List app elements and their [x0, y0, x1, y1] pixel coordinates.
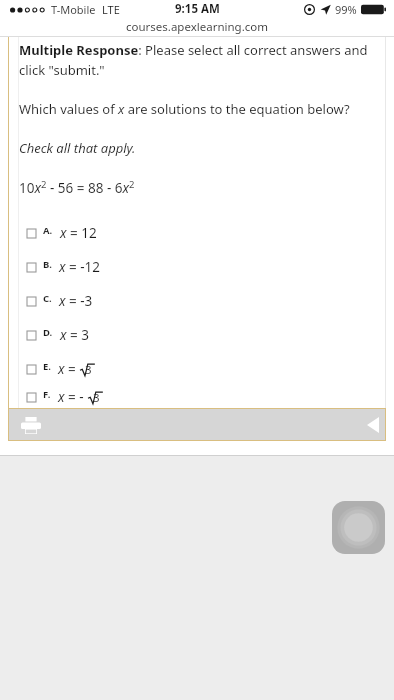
staticText: C. [43, 292, 52, 305]
staticText: F. [43, 388, 51, 401]
button[interactable]: F. [19, 386, 380, 408]
staticText: 3 [85, 362, 92, 378]
button[interactable]: More [362, 412, 384, 438]
staticText: click "submit." [19, 61, 105, 79]
staticText: LTE [102, 2, 120, 17]
staticText: x = - [58, 388, 88, 406]
button[interactable]: Print [18, 412, 44, 438]
staticText: B. [43, 258, 52, 271]
staticText: Check all that apply. [19, 139, 136, 157]
staticText: 3 [93, 390, 100, 406]
staticText: 99% [335, 2, 357, 17]
staticText: 10x2 - 56 = 88 - 6x2 [19, 178, 135, 197]
staticText: x = [58, 360, 80, 378]
button[interactable]: C. [19, 284, 380, 318]
staticText: T-Mobile [51, 2, 96, 17]
staticText: D. [43, 326, 53, 339]
button[interactable]: D. [19, 318, 380, 352]
button[interactable]: E. [19, 352, 380, 386]
staticText: x = -12 [59, 258, 101, 276]
staticText: Multiple Response: Please select all cor… [19, 41, 368, 59]
button[interactable]: AssistiveTouch [332, 501, 385, 554]
staticText: x = -3 [59, 292, 93, 310]
staticText: A. [43, 224, 53, 237]
staticText: x = 3 [60, 326, 89, 344]
button[interactable]: B. [19, 250, 380, 284]
staticText: 9:15 AM [175, 1, 220, 17]
button[interactable]: A. [19, 216, 380, 250]
staticText: x = 12 [60, 224, 97, 242]
staticText: courses.apexlearning.com [126, 19, 269, 35]
staticText: Which values of x are solutions to the e… [19, 100, 350, 118]
staticText: E. [43, 360, 51, 373]
